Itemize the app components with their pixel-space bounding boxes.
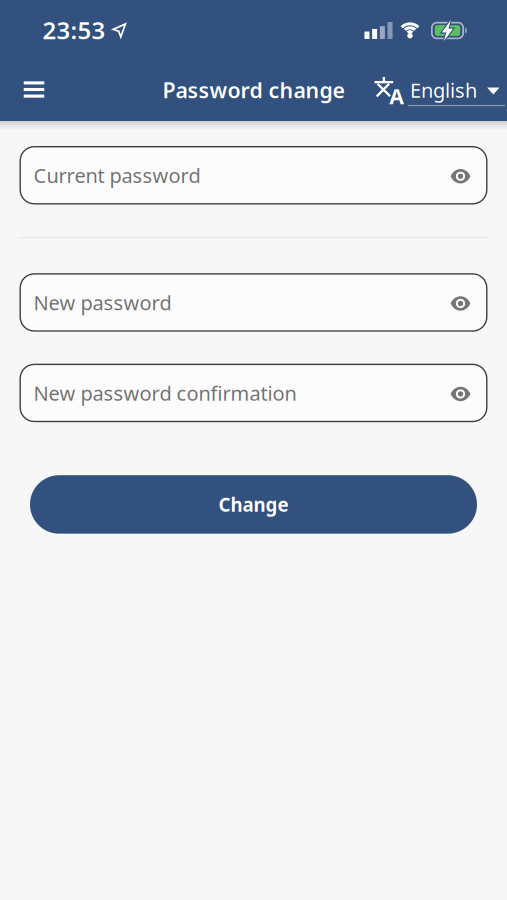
button[interactable]: Show password <box>443 285 477 319</box>
button[interactable]: New password <box>19 273 487 332</box>
button[interactable]: Menu <box>12 69 56 109</box>
button[interactable]: Language: English <box>374 75 499 105</box>
staticText: 23:53 <box>42 14 105 46</box>
button[interactable]: Show password <box>443 158 477 192</box>
button[interactable]: Change <box>30 475 477 534</box>
staticText: Change <box>218 492 288 517</box>
staticText: A <box>389 82 404 110</box>
staticText: English <box>410 77 477 103</box>
button[interactable]: New password confirmation <box>19 364 487 422</box>
button[interactable]: Current password <box>19 146 487 204</box>
staticText: Password change <box>162 76 344 104</box>
staticText: New password <box>33 289 171 316</box>
staticText: Current password <box>33 162 200 189</box>
button[interactable]: Show password <box>443 376 477 410</box>
staticText: New password confirmation <box>33 380 296 406</box>
